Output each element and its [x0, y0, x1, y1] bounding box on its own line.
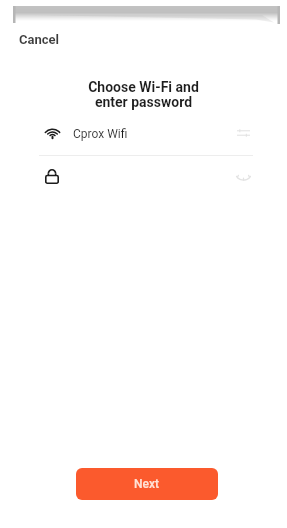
staticText: Cprox Wifi — [73, 127, 128, 141]
staticText: Next — [134, 477, 160, 491]
other: Show password — [236, 171, 251, 180]
staticText: Cancel — [19, 32, 60, 47]
staticText: Choose Wi-Fi and enter password — [0, 79, 287, 111]
button[interactable]: Cancel — [9, 26, 70, 53]
button[interactable]: Cprox Wifi — [0, 119, 287, 149]
button[interactable]: Next — [76, 468, 218, 500]
button[interactable]: Show password — [0, 161, 287, 192]
other: Network options — [237, 129, 250, 137]
